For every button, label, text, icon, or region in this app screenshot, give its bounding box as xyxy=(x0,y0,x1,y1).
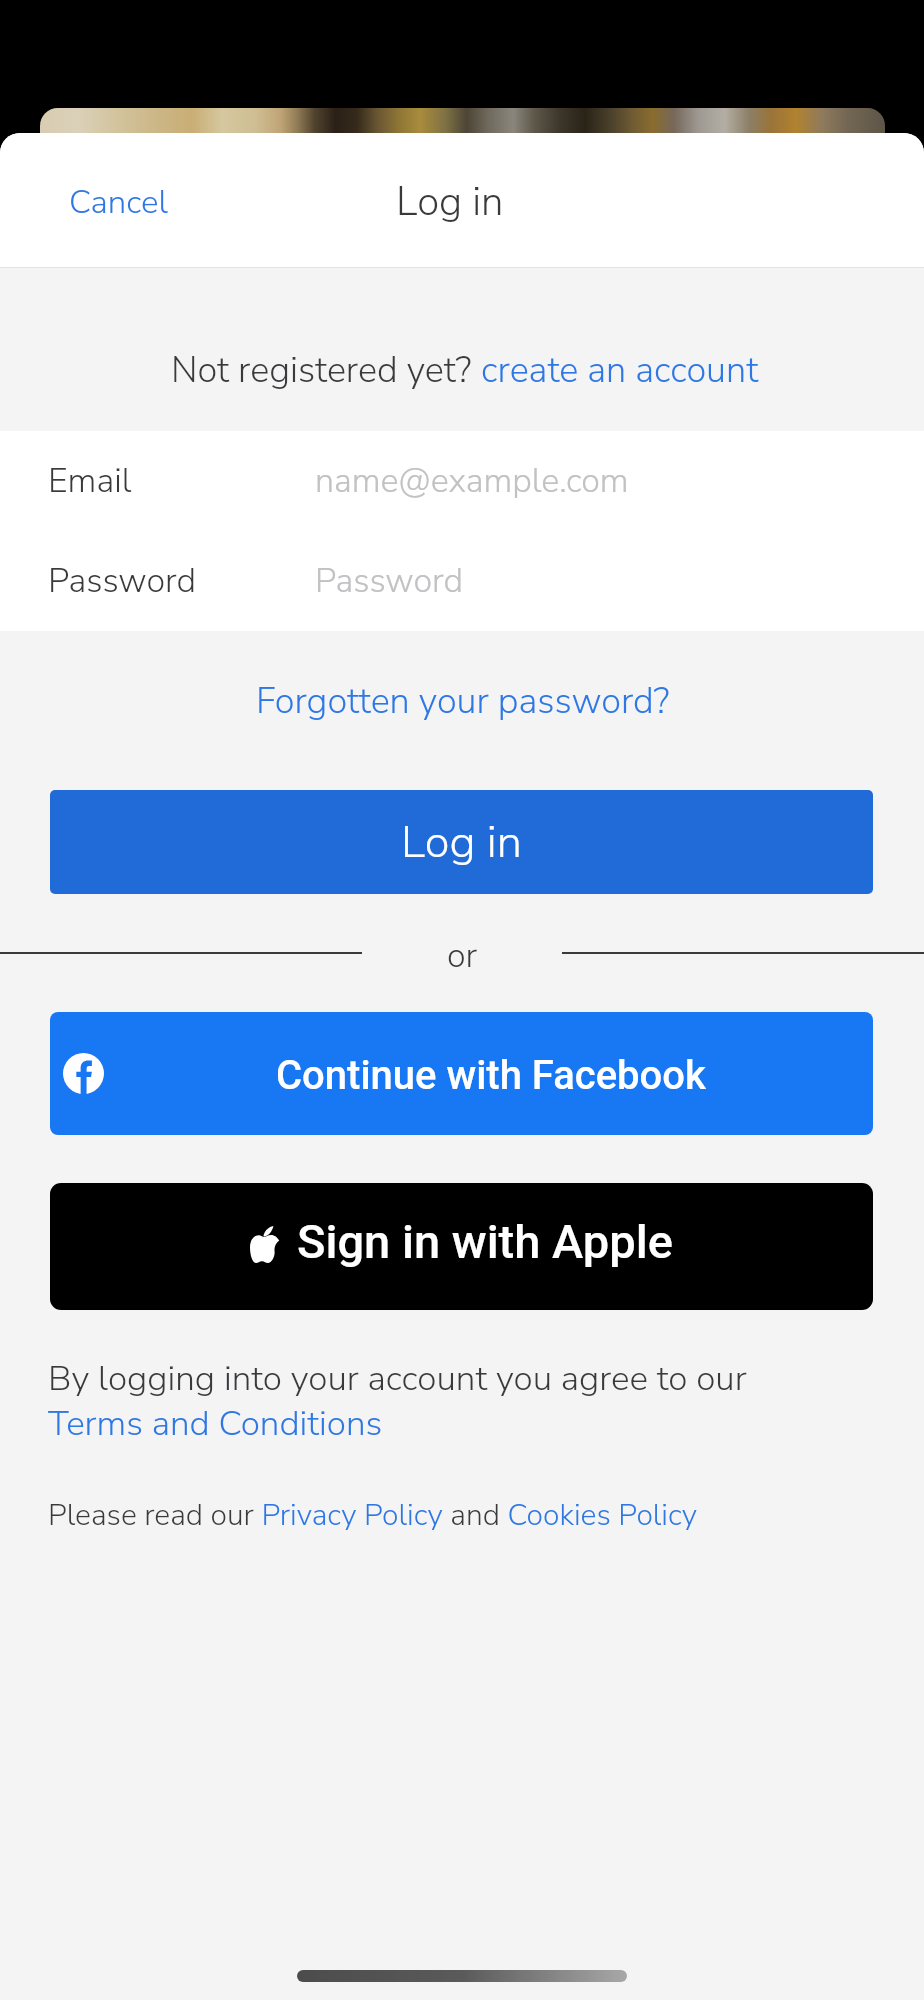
staticText: Log in xyxy=(396,175,504,230)
button[interactable]: Log in xyxy=(50,790,873,894)
staticText: Forgotten your password? xyxy=(256,677,670,726)
staticText: Password xyxy=(315,558,464,604)
other: Apple xyxy=(250,1226,280,1263)
button[interactable]: Email xyxy=(0,431,924,531)
button[interactable]: By logging into your account you agree t… xyxy=(48,1355,747,1447)
button[interactable]: Cancel xyxy=(61,172,176,233)
button[interactable]: Please read our Privacy Policy and Cooki… xyxy=(48,1495,698,1536)
button[interactable]: Forgotten your password? xyxy=(248,671,678,732)
staticText: By logging into your account you agree t… xyxy=(48,1355,747,1447)
staticText: Cancel xyxy=(69,180,168,225)
staticText: Password xyxy=(48,558,197,604)
button[interactable]: Facebook xyxy=(50,1012,873,1135)
other: Facebook xyxy=(63,1053,104,1094)
staticText: or xyxy=(447,933,478,973)
staticText: Log in xyxy=(401,812,522,873)
staticText: Please read our Privacy Policy and Cooki… xyxy=(48,1495,698,1536)
button[interactable]: Password xyxy=(0,531,924,631)
staticText: Sign in with Apple xyxy=(297,1214,673,1269)
staticText: name@example.com xyxy=(315,458,629,504)
staticText: Not registered yet? xyxy=(171,346,481,395)
staticText: Continue with Facebook xyxy=(276,1052,706,1099)
staticText: create an account xyxy=(481,346,759,395)
button[interactable]: create an account xyxy=(481,346,759,395)
staticText: Email xyxy=(48,458,132,504)
button[interactable]: Apple xyxy=(50,1183,873,1310)
